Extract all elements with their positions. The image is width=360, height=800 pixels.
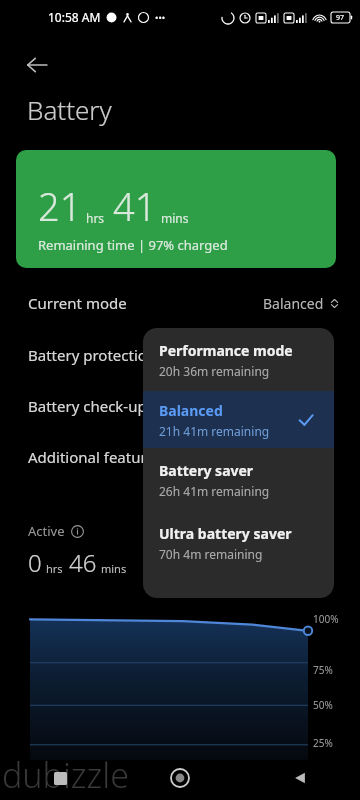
staticText: Battery check-up [28,396,147,416]
staticText: mins [161,210,189,226]
staticText: 46 [69,546,97,579]
button[interactable]: Battery protection [0,342,360,368]
button[interactable]: Back [16,44,58,86]
button[interactable]: Back [240,756,360,800]
staticText: Battery protection [28,345,157,365]
button[interactable]: Recents [0,756,120,800]
staticText: Additional features [28,447,162,467]
staticText: 25% [313,736,333,750]
button[interactable]: Home [120,756,240,800]
staticText: Performance mode [159,341,293,360]
button[interactable]: Additional features [0,444,360,470]
staticText: 21h 41m remaining [159,423,270,439]
staticText: Remaining time | 97% charged [38,236,228,254]
button[interactable]: Battery saver [143,448,334,511]
staticText: 0 [28,546,42,579]
button[interactable]: Battery check-up [0,393,360,419]
button[interactable]: Balanced [143,391,334,448]
button[interactable]: Performance mode [143,328,334,391]
staticText: 10:58 AM [48,9,101,25]
staticText: mins [101,561,127,576]
staticText: 21 [38,180,82,232]
button[interactable]: 21 [16,150,336,268]
staticText: Ultra battery saver [159,524,292,543]
staticText: 41 [113,180,157,232]
staticText: Balanced [263,294,324,313]
staticText: Active [28,522,65,540]
staticText: 20h 36m remaining [159,363,270,379]
button[interactable]: Current mode [0,290,360,316]
staticText: hrs [86,210,105,226]
staticText: Current mode [28,293,127,313]
staticText: dubizzle [2,752,129,798]
staticText: 26h 41m remaining [159,483,270,499]
staticText: 97 [336,13,345,23]
staticText: Balanced [159,401,223,420]
staticText: Battery [27,92,112,127]
staticText: 100% [313,612,339,626]
staticText: 75% [313,663,333,677]
button[interactable]: Ultra battery saver [143,511,334,574]
staticText: Battery saver [159,461,254,480]
staticText: hrs [46,561,63,576]
staticText: 70h 4m remaining [159,546,263,562]
staticText: ••• [155,11,166,23]
staticText: 50% [313,698,333,712]
